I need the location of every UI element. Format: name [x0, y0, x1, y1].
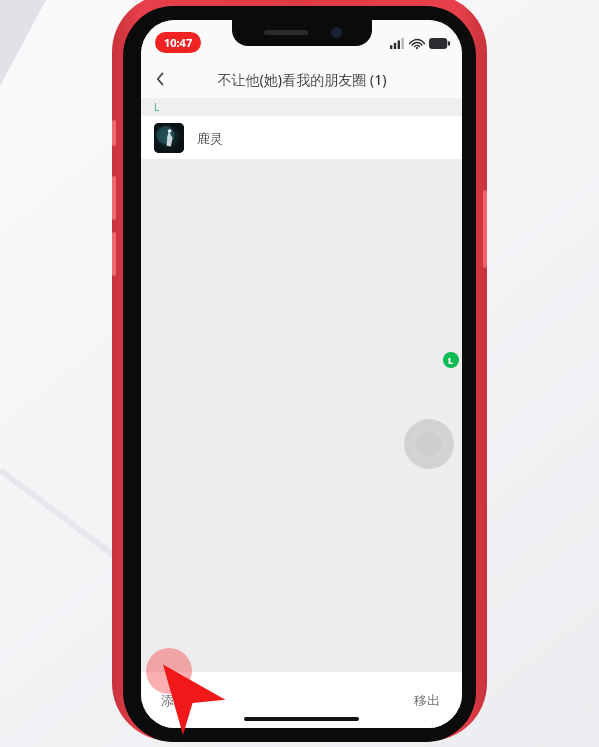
- button[interactable]: 移出: [406, 686, 448, 714]
- staticText: L: [448, 354, 454, 366]
- staticText: L: [154, 100, 160, 114]
- staticText: 不让他(她)看我的朋友圈 (1): [217, 70, 387, 89]
- button[interactable]: 鹿灵: [141, 116, 462, 159]
- staticText: 添加: [161, 692, 187, 708]
- staticText: 移出: [414, 692, 440, 708]
- button[interactable]: Back: [141, 60, 181, 98]
- staticText: 鹿灵: [197, 130, 223, 146]
- staticText: 10:47: [164, 35, 193, 50]
- button[interactable]: 添加: [153, 686, 195, 714]
